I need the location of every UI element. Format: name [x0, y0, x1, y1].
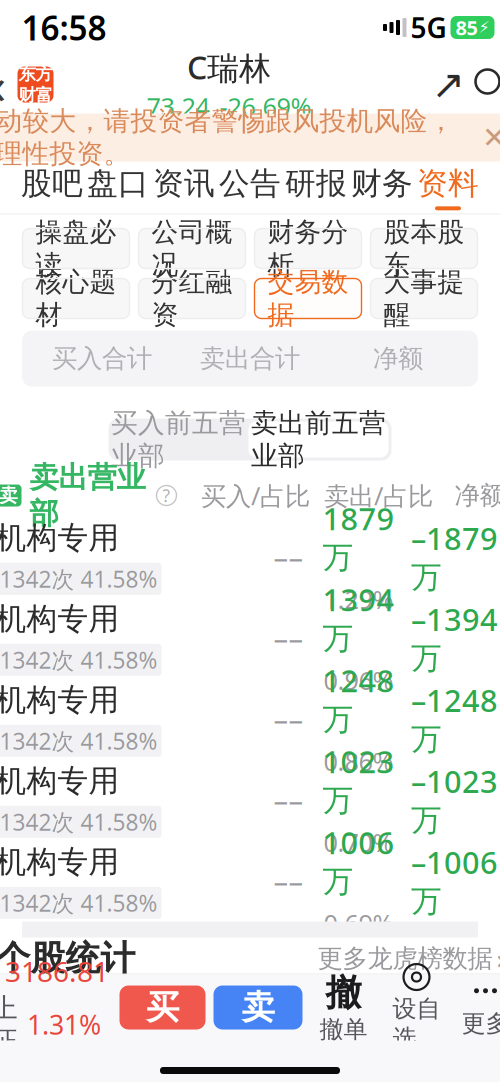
staticText: 资讯 — [153, 165, 215, 202]
staticText: 1342次 41.58% — [0, 645, 157, 675]
staticText: 公告 — [219, 165, 281, 202]
button[interactable]: 更多龙虎榜数据 — [317, 941, 500, 976]
button[interactable]: 东方财富 — [15, 64, 55, 104]
staticText: 撤 — [325, 971, 361, 1015]
staticText: 16:58 — [21, 5, 106, 50]
staticText: 股本股东 — [383, 216, 464, 281]
button[interactable]: 财务 — [349, 162, 415, 212]
staticText: –1394万 — [411, 599, 498, 677]
staticText: 撤单 — [319, 1015, 367, 1044]
button[interactable]: 公司概况 — [138, 228, 245, 268]
staticText: 上证 — [0, 992, 18, 1057]
staticText: 卖 — [0, 484, 18, 507]
button[interactable]: 分红融资 — [138, 278, 245, 318]
staticText: 研报 — [285, 165, 347, 202]
staticText: 盘口 — [87, 165, 149, 202]
staticText: 财务 — [351, 165, 413, 202]
staticText: 财富 — [18, 84, 52, 106]
staticText: –– — [273, 780, 303, 819]
button[interactable]: 更多 — [456, 976, 500, 1038]
staticText: 机构专用 — [0, 519, 119, 557]
staticText: –1879万 — [411, 518, 498, 596]
staticText: 0.86% — [323, 744, 393, 778]
button[interactable]: 研报 — [283, 162, 349, 212]
staticText: 财务分析 — [267, 216, 348, 281]
staticText: 买入/占比 — [201, 479, 310, 512]
staticText: 操盘必读 — [35, 216, 116, 281]
staticText: 1.31% — [27, 1007, 101, 1042]
button[interactable]: 股吧 — [19, 162, 85, 212]
staticText: 买 — [146, 987, 179, 1028]
staticText: 买入合计 — [52, 343, 152, 374]
staticText: 1342次 41.58% — [0, 726, 157, 756]
button[interactable]: ▲ — [0, 976, 109, 1038]
staticText: 卖出/占比 — [324, 479, 433, 512]
button[interactable]: 大事提醒 — [370, 278, 477, 318]
button[interactable]: 机构专用 — [0, 678, 500, 759]
button[interactable]: Search — [468, 61, 500, 107]
button[interactable]: Back — [0, 57, 15, 111]
button[interactable]: 股本股东 — [370, 228, 477, 268]
staticText: 净额 — [454, 480, 500, 511]
staticText: ‹ — [0, 51, 6, 118]
button[interactable]: 卖 — [213, 985, 302, 1029]
staticText: 卖出前五营业部 — [251, 407, 386, 472]
button[interactable]: 设自选 — [384, 976, 448, 1038]
button[interactable]: 机构专用 — [0, 840, 500, 921]
staticText: ⚡︎ — [478, 18, 489, 37]
staticText: 设自选 — [392, 994, 440, 1053]
staticText: 大事提醒 — [383, 266, 464, 331]
staticText: –– — [273, 618, 303, 657]
staticText: 1023万 — [322, 741, 394, 819]
staticText: 核心题材 — [35, 266, 116, 331]
button[interactable]: 机构专用 — [0, 759, 500, 840]
staticText: 更多 — [461, 1009, 500, 1038]
button[interactable]: 卖出前五营业部 — [248, 421, 388, 457]
staticText: 0.96% — [323, 663, 393, 697]
staticText: 1342次 41.58% — [0, 888, 157, 918]
button[interactable]: 机构专用 — [0, 597, 500, 678]
staticText: 73.24 — [146, 89, 209, 123]
staticText: 个股统计 — [0, 937, 135, 980]
button[interactable]: 机构专用 — [0, 516, 500, 597]
staticText: –1006万 — [411, 842, 498, 920]
button[interactable]: 资讯 — [151, 162, 217, 212]
staticText: –– — [273, 537, 303, 576]
staticText: 1342次 41.58% — [0, 564, 157, 594]
button[interactable]: 操盘必读 — [22, 228, 129, 268]
staticText: 东方 — [18, 63, 52, 84]
staticText: 买入前五营业部 — [111, 407, 246, 472]
button[interactable]: 交易数据 — [254, 278, 361, 318]
staticText: –1023万 — [411, 761, 498, 839]
staticText: 0.69% — [323, 906, 393, 940]
staticText: ? — [162, 484, 170, 507]
button[interactable]: Help — [153, 482, 179, 508]
button[interactable]: 资料 — [415, 162, 481, 212]
staticText: 公司概况 — [151, 216, 232, 281]
button[interactable]: 财务分析 — [254, 228, 361, 268]
staticText: 动较大，请投资者警惕跟风投机风险，理性投资。 — [0, 105, 454, 170]
button[interactable]: 买入前五营业部 — [108, 418, 248, 460]
staticText: 1006万 — [322, 822, 394, 900]
button[interactable]: 撤 — [316, 976, 370, 1038]
staticText: 卖 — [241, 987, 274, 1028]
staticText: 交易数据 — [267, 266, 348, 331]
staticText: 分红融资 — [151, 266, 232, 331]
staticText: 机构专用 — [0, 600, 119, 638]
staticText: 85 — [455, 14, 477, 41]
button[interactable]: Share — [428, 61, 468, 107]
staticText: 资料 — [417, 165, 479, 202]
button[interactable]: 公告 — [217, 162, 283, 212]
button[interactable]: 盘口 — [85, 162, 151, 212]
staticText: ✕ — [482, 121, 500, 154]
staticText: –– — [273, 861, 303, 900]
staticText: –– — [273, 699, 303, 738]
staticText: 净额 — [373, 343, 423, 374]
staticText: C瑞林 — [187, 46, 271, 88]
staticText: 3186.81 — [5, 952, 109, 990]
button[interactable]: 买 — [119, 985, 205, 1029]
staticText: 卖出营业部 — [29, 459, 145, 532]
button[interactable]: 核心题材 — [22, 278, 129, 318]
staticText: 更多龙虎榜数据 — [317, 943, 492, 974]
button[interactable]: Close banner — [476, 119, 500, 155]
